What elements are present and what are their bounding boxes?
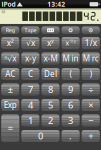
button[interactable]: 0 bbox=[21, 130, 59, 142]
staticText: C bbox=[28, 69, 33, 79]
button[interactable]: C bbox=[21, 68, 39, 80]
button[interactable]: ⚙ bbox=[82, 26, 100, 34]
button[interactable]: 1/x bbox=[82, 37, 100, 49]
button[interactable]: x-y bbox=[21, 52, 39, 64]
button[interactable]: ⁿ√x bbox=[1, 52, 19, 64]
button[interactable]: M rc bbox=[82, 52, 100, 64]
button[interactable]: ÷ bbox=[82, 83, 100, 95]
staticText: ⚙ bbox=[89, 28, 93, 32]
button[interactable] bbox=[41, 26, 59, 34]
button[interactable]: ( bbox=[62, 68, 80, 80]
staticText: Exp bbox=[4, 100, 17, 110]
button[interactable]: Del bbox=[41, 68, 59, 80]
button[interactable]: AC bbox=[1, 68, 19, 80]
staticText: 2 bbox=[48, 114, 53, 127]
button[interactable]: ± bbox=[1, 83, 19, 95]
staticText: 0 bbox=[38, 130, 43, 142]
staticText: 1/y bbox=[70, 38, 76, 44]
staticText: 7 bbox=[28, 83, 33, 96]
staticText: 5 bbox=[48, 99, 53, 111]
staticText: iPod bbox=[1, 0, 15, 9]
staticText: x bbox=[65, 39, 69, 47]
staticText: x-y bbox=[25, 53, 36, 64]
button[interactable]: x bbox=[1, 37, 19, 49]
button[interactable]: − bbox=[82, 114, 100, 126]
staticText: x bbox=[7, 38, 11, 48]
button[interactable]: × bbox=[82, 99, 100, 111]
button[interactable]: M in bbox=[62, 52, 80, 64]
button[interactable]: 1 bbox=[21, 114, 39, 126]
staticText: − bbox=[88, 114, 93, 127]
button[interactable]: 3 bbox=[62, 114, 80, 126]
staticText: × bbox=[88, 99, 93, 111]
button[interactable]: 6 bbox=[62, 99, 80, 111]
staticText: Tape bbox=[24, 27, 36, 34]
staticText: ⁿ√x bbox=[4, 53, 16, 64]
staticText: 13:42 bbox=[47, 0, 65, 9]
button[interactable]: 7 bbox=[21, 83, 39, 95]
staticText: 2 bbox=[11, 37, 14, 44]
button[interactable]: Exp bbox=[1, 99, 19, 111]
staticText: = bbox=[8, 122, 13, 134]
staticText: M rc bbox=[83, 53, 99, 64]
staticText: + bbox=[88, 130, 93, 142]
button[interactable]: x bbox=[62, 37, 80, 49]
button[interactable]: √x bbox=[21, 37, 39, 49]
staticText: y bbox=[51, 37, 54, 44]
button[interactable]: + bbox=[82, 130, 100, 142]
staticText: x-M bbox=[43, 53, 57, 64]
button[interactable]: 8 bbox=[41, 83, 59, 95]
staticText: 1/x bbox=[85, 38, 97, 48]
staticText: ÷ bbox=[88, 83, 93, 96]
staticText: ± bbox=[8, 83, 13, 96]
button[interactable]: ) bbox=[82, 68, 100, 80]
button[interactable]: Tape bbox=[21, 26, 39, 34]
button[interactable]: = bbox=[1, 114, 19, 142]
staticText: Del bbox=[44, 69, 57, 79]
staticText: M in bbox=[63, 53, 79, 64]
staticText: AC bbox=[5, 69, 15, 79]
staticText: √x bbox=[26, 38, 35, 48]
button[interactable]: 2 bbox=[41, 114, 59, 126]
staticText: ( bbox=[70, 69, 72, 79]
button[interactable]: x-M bbox=[41, 52, 59, 64]
staticText: x bbox=[47, 38, 51, 48]
staticText: 4 bbox=[28, 99, 33, 111]
staticText: 3 bbox=[68, 114, 73, 127]
button[interactable]: . bbox=[62, 130, 80, 142]
button[interactable] bbox=[62, 26, 80, 34]
button[interactable]: 4 bbox=[21, 99, 39, 111]
button[interactable]: 9 bbox=[62, 83, 80, 95]
staticText: 8 bbox=[48, 83, 53, 96]
staticText: ) bbox=[90, 69, 92, 79]
button[interactable]: 5 bbox=[41, 99, 59, 111]
staticText: . bbox=[69, 130, 72, 142]
staticText: 1 bbox=[28, 114, 33, 127]
button[interactable]: x bbox=[41, 37, 59, 49]
staticText: 6 bbox=[68, 99, 73, 111]
staticText: M bbox=[1, 9, 5, 14]
staticText: 9 bbox=[68, 83, 73, 96]
staticText: Reg bbox=[6, 27, 15, 34]
button[interactable]: Reg bbox=[1, 26, 19, 34]
